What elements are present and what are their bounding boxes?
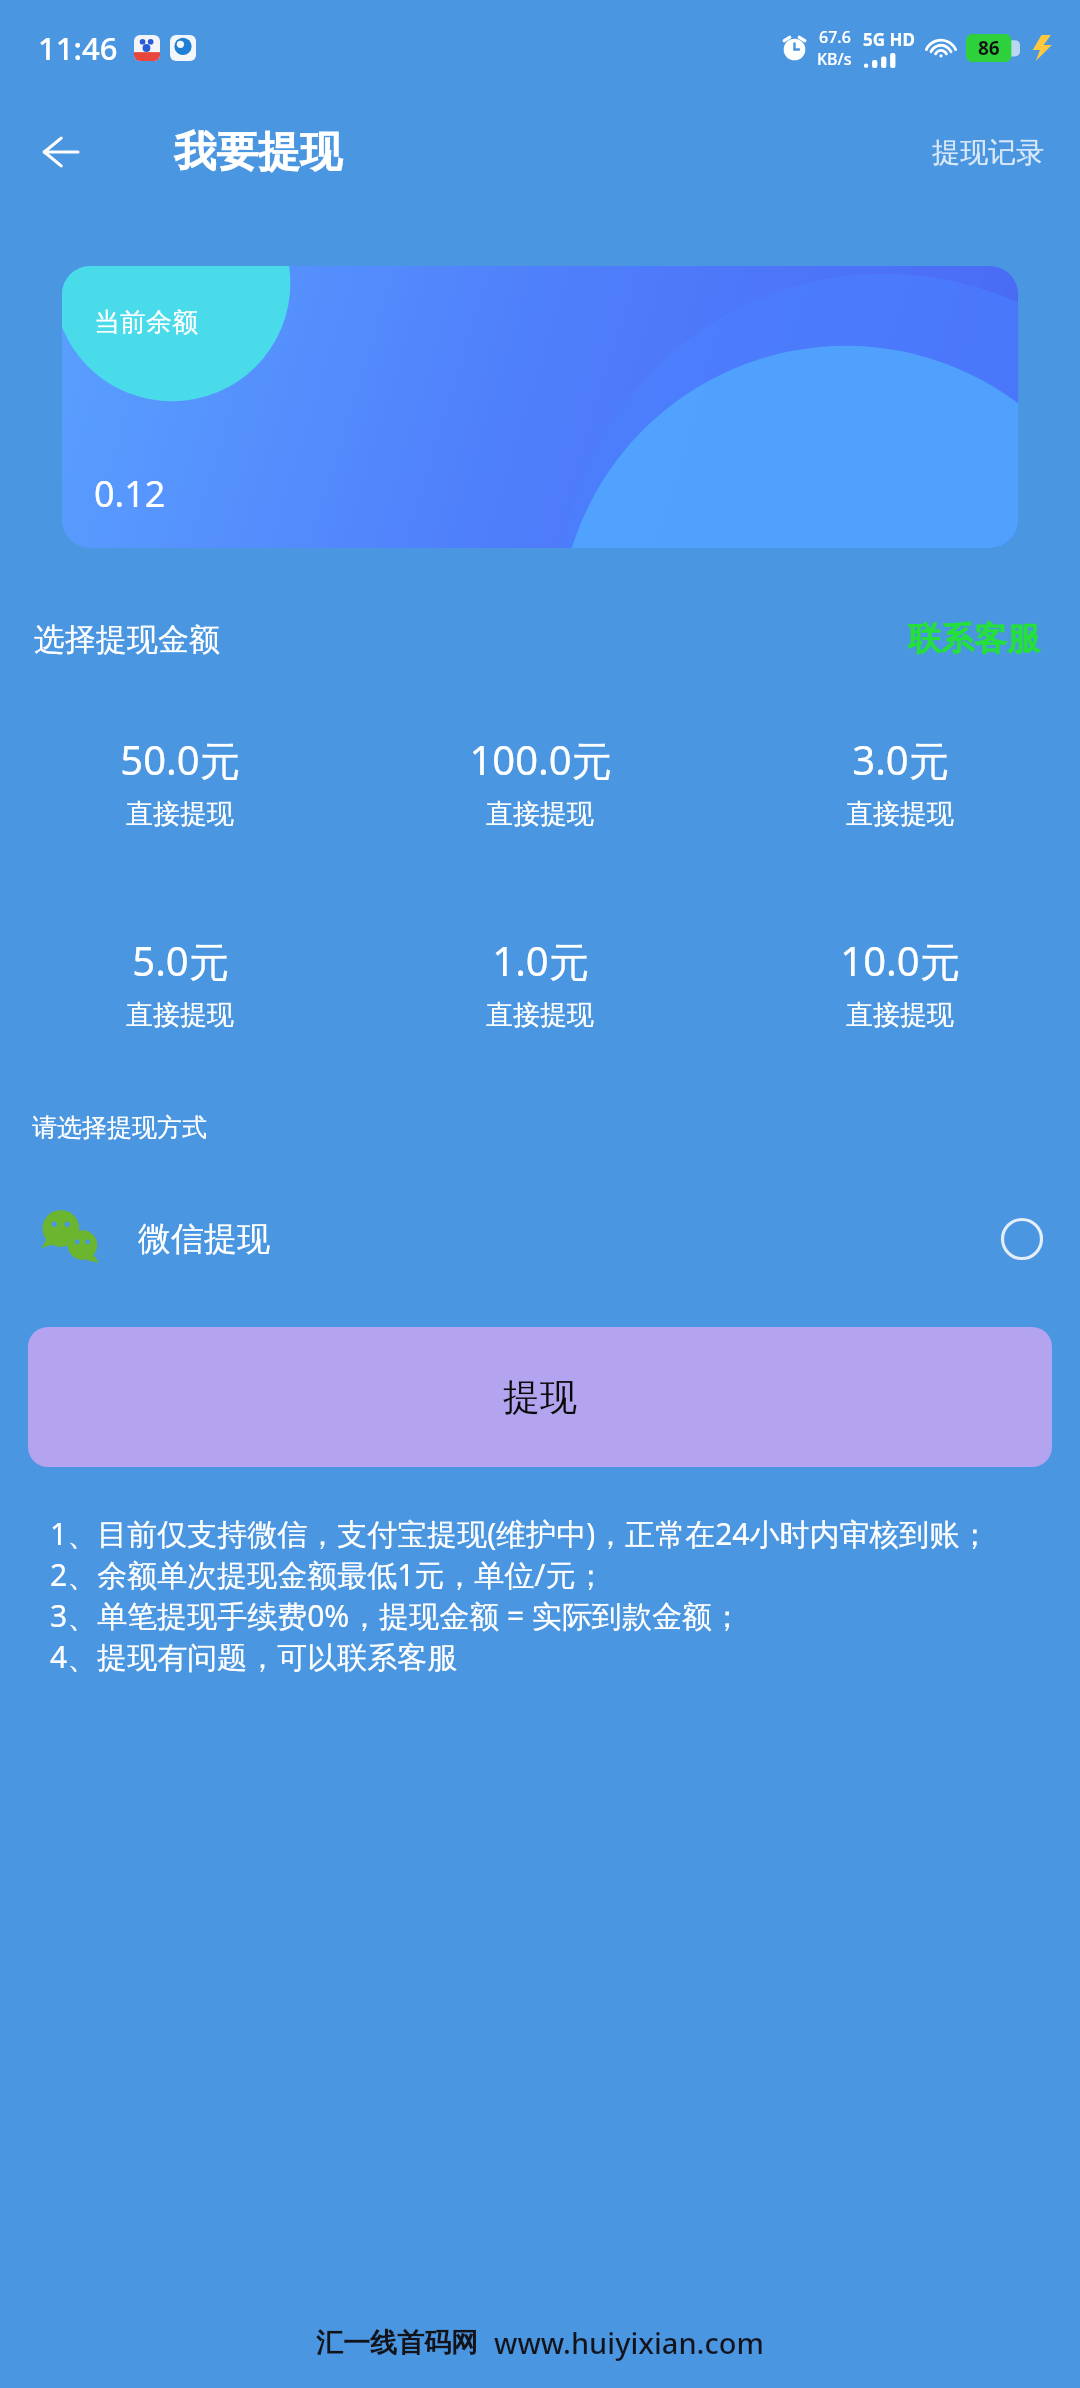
staticText: 请选择提现方式 (32, 1112, 207, 1143)
staticText: KB/s (817, 48, 852, 70)
staticText: 联系客服 (908, 618, 1040, 660)
staticText: 67.6 (819, 26, 851, 48)
staticText: 当前余额 (94, 306, 198, 339)
button[interactable]: 100.0元 (360, 726, 720, 837)
staticText: 汇一线首码网 (316, 2326, 478, 2360)
staticText: 3.0元 (852, 732, 949, 787)
staticText: 微信提现 (138, 1218, 270, 1260)
button[interactable]: 联系客服 (902, 610, 1046, 668)
staticText: 0.12 (94, 469, 166, 518)
staticText: 直接提现 (846, 998, 954, 1032)
staticText: 直接提现 (126, 998, 234, 1032)
button[interactable]: 3.0元 (720, 726, 1080, 837)
staticText: 10.0元 (840, 933, 960, 988)
staticText: 50.0元 (120, 732, 240, 787)
button[interactable]: 1.0元 (360, 927, 720, 1038)
staticText: 直接提现 (486, 797, 594, 831)
staticText: 5.0元 (132, 933, 229, 988)
button[interactable]: Back (34, 124, 90, 180)
staticText: 提现 (503, 1374, 577, 1421)
staticText: 直接提现 (486, 998, 594, 1032)
staticText: www.huiyixian.com (494, 2323, 764, 2362)
staticText: 我要提现 (174, 126, 342, 179)
staticText: 100.0元 (469, 732, 612, 787)
staticText: 提现记录 (932, 135, 1044, 170)
button[interactable]: 微信提现 (0, 1191, 1080, 1287)
button[interactable]: 提现 (28, 1327, 1052, 1467)
staticText: 1.0元 (492, 933, 589, 988)
button[interactable]: 当前余额 (62, 266, 1018, 548)
staticText: 5G HD (863, 28, 915, 51)
button[interactable]: 5.0元 (0, 927, 360, 1038)
staticText: 直接提现 (846, 797, 954, 831)
button[interactable]: 10.0元 (720, 927, 1080, 1038)
staticText: 2、余额单次提现金额最低1元，单位/元； (50, 1554, 606, 1595)
staticText: 4、提现有问题，可以联系客服 (50, 1636, 458, 1677)
button[interactable]: 50.0元 (0, 726, 360, 837)
staticText: 选择提现金额 (34, 620, 220, 659)
staticText: 3、单笔提现手续费0%，提现金额 = 实际到款金额； (50, 1595, 743, 1636)
staticText: 11:46 (38, 27, 118, 69)
staticText: 直接提现 (126, 797, 234, 831)
button[interactable]: 提现记录 (920, 125, 1056, 180)
staticText: 86 (978, 35, 1000, 61)
staticText: 1、目前仅支持微信，支付宝提现(维护中)，正常在24小时内审核到账； (50, 1513, 990, 1554)
